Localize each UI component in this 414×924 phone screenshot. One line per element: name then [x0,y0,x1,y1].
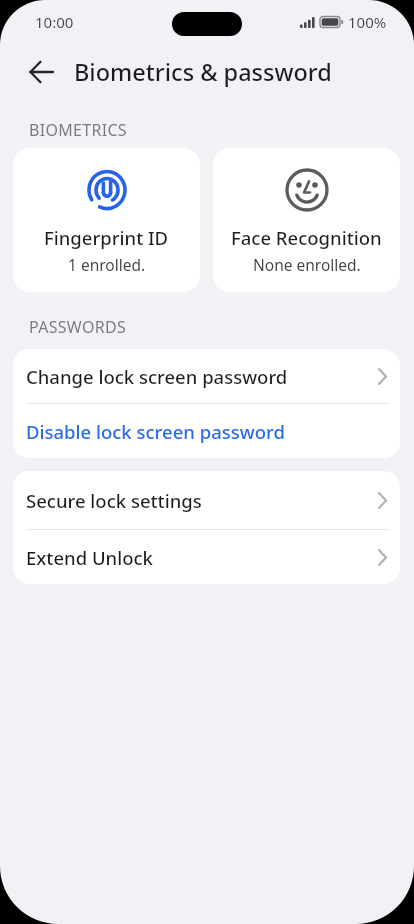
staticText: Fingerprint ID [44,225,169,250]
staticText: Change lock screen password [26,364,378,389]
button[interactable]: Extend Unlock [13,530,400,584]
staticText: 100% [348,12,387,32]
staticText: 10:00 [35,12,74,32]
staticText: Secure lock settings [26,488,378,513]
staticText: Face Recognition [231,225,382,250]
button[interactable] [16,44,68,100]
button[interactable]: Fingerprint ID [13,148,200,292]
staticText: Extend Unlock [26,545,378,570]
button[interactable]: Disable lock screen password [13,404,400,458]
button[interactable]: Secure lock settings [13,471,400,529]
staticText: Biometrics & password [74,56,332,88]
staticText: 1 enrolled. [68,254,146,275]
button[interactable]: Face Recognition [213,148,400,292]
staticText: Disable lock screen password [26,419,387,444]
staticText: None enrolled. [253,254,361,275]
staticText: PASSWORDS [29,316,127,338]
button[interactable]: Change lock screen password [13,349,400,403]
staticText: BIOMETRICS [29,119,127,141]
